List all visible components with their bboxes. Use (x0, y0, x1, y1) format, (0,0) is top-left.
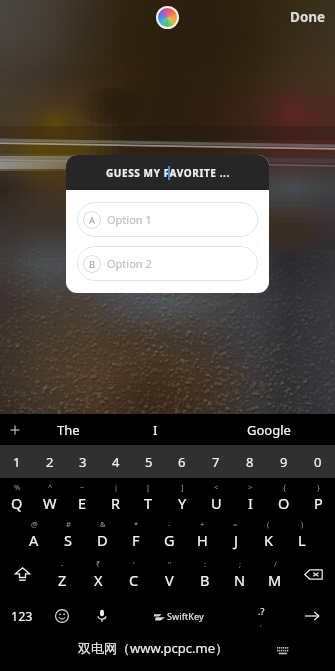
staticText: I (248, 493, 253, 513)
staticText: = (233, 519, 238, 529)
staticText: 2 (46, 453, 54, 471)
staticText: D (97, 530, 108, 550)
button[interactable]: [ (132, 478, 165, 516)
button[interactable]: < (199, 478, 233, 516)
staticText: * (134, 519, 139, 529)
button[interactable]: : (187, 553, 222, 595)
staticText: # (66, 519, 71, 529)
button[interactable]: 1 (0, 445, 33, 478)
staticText: ; (239, 559, 242, 569)
staticText: % (14, 482, 21, 492)
staticText: & (100, 519, 106, 529)
staticText: < (214, 482, 219, 492)
button[interactable]: Emoji (44, 595, 79, 637)
staticText: M (268, 570, 282, 590)
button[interactable]: 2 (33, 445, 66, 478)
button[interactable]: + (186, 516, 219, 553)
staticText: ) (301, 519, 304, 529)
staticText: 8 (246, 453, 254, 471)
staticText: H (197, 530, 208, 550)
staticText: .? (258, 605, 265, 617)
button[interactable]: 8 (233, 445, 267, 478)
staticText: Q (11, 493, 23, 513)
staticText: 5 (145, 453, 153, 471)
staticText: SwiftKey (167, 610, 204, 622)
button[interactable]: & (85, 516, 119, 553)
button[interactable]: > (233, 478, 267, 516)
button[interactable]: Backspace (292, 553, 335, 595)
staticText: Y (178, 493, 187, 513)
button[interactable]: 7 (199, 445, 233, 478)
staticText: P (314, 493, 323, 513)
staticText: } (317, 482, 320, 492)
staticText: GUESS MY FAVORITE ... (106, 166, 230, 180)
button[interactable]: Colour picker (156, 6, 179, 29)
staticText: B (89, 258, 96, 271)
staticText: 123 (11, 608, 33, 625)
button[interactable]: * (119, 516, 153, 553)
button[interactable]: ' (116, 553, 152, 595)
button[interactable]: / (257, 553, 292, 595)
button[interactable]: @ (17, 516, 51, 553)
staticText: ₹ (96, 559, 101, 569)
button[interactable]: 123 (0, 595, 44, 637)
staticText: I (153, 421, 158, 439)
staticText: Option 2 (107, 256, 152, 271)
button[interactable]: Shift (0, 553, 44, 595)
button[interactable]: ( (252, 516, 285, 553)
button[interactable]: ) (285, 516, 318, 553)
button[interactable]: 6 (165, 445, 199, 478)
staticText: | (114, 482, 119, 492)
button[interactable]: More suggestions (0, 414, 29, 445)
button[interactable]: Enter (289, 595, 335, 637)
staticText: T (144, 493, 153, 513)
button[interactable]: Done (290, 8, 326, 26)
button[interactable]: .? (233, 595, 289, 637)
staticText: 3 (79, 453, 87, 471)
button[interactable]: " (152, 553, 187, 595)
other: Keyboard (277, 647, 289, 655)
button[interactable]: 3 (66, 445, 99, 478)
staticText: W (43, 493, 57, 513)
button[interactable]: | (99, 478, 132, 516)
button[interactable]: - (153, 516, 186, 553)
staticText: A (89, 214, 96, 227)
button[interactable]: { (267, 478, 301, 516)
staticText: 0 (314, 453, 322, 471)
staticText: J (234, 530, 238, 550)
button[interactable]: The (29, 414, 107, 445)
staticText: U (211, 493, 222, 513)
button[interactable]: ^ (33, 478, 66, 516)
staticText: C (129, 570, 139, 590)
button[interactable]: } (301, 478, 335, 516)
staticText: 9 (280, 453, 288, 471)
button[interactable]: ~ (66, 478, 99, 516)
staticText: R (111, 493, 121, 513)
staticText: X (94, 570, 103, 590)
staticText: Z (58, 570, 67, 590)
staticText: ^ (48, 482, 53, 492)
button[interactable]: - (44, 553, 80, 595)
button[interactable]: ; (222, 553, 257, 595)
staticText: Done (290, 8, 326, 26)
button[interactable]: Voice input (79, 595, 124, 637)
button[interactable]: = (219, 516, 252, 553)
staticText: 双电网（www.pcpc.me） (78, 639, 229, 657)
button[interactable]: Google (203, 414, 335, 445)
button[interactable]: I (107, 414, 203, 445)
button[interactable]: # (51, 516, 85, 553)
button[interactable]: ₹ (80, 553, 116, 595)
staticText: N (234, 570, 246, 590)
staticText: K (264, 530, 273, 550)
button[interactable]: 4 (99, 445, 132, 478)
button[interactable]: ] (165, 478, 199, 516)
staticText: L (298, 530, 306, 550)
button[interactable]: % (0, 478, 33, 516)
button[interactable]: 0 (301, 445, 335, 478)
button[interactable]: 5 (132, 445, 165, 478)
button[interactable]: 9 (267, 445, 301, 478)
button[interactable]: A (77, 202, 258, 237)
staticText: V (165, 570, 174, 590)
staticText: { (283, 482, 286, 492)
button[interactable]: B (77, 246, 258, 281)
